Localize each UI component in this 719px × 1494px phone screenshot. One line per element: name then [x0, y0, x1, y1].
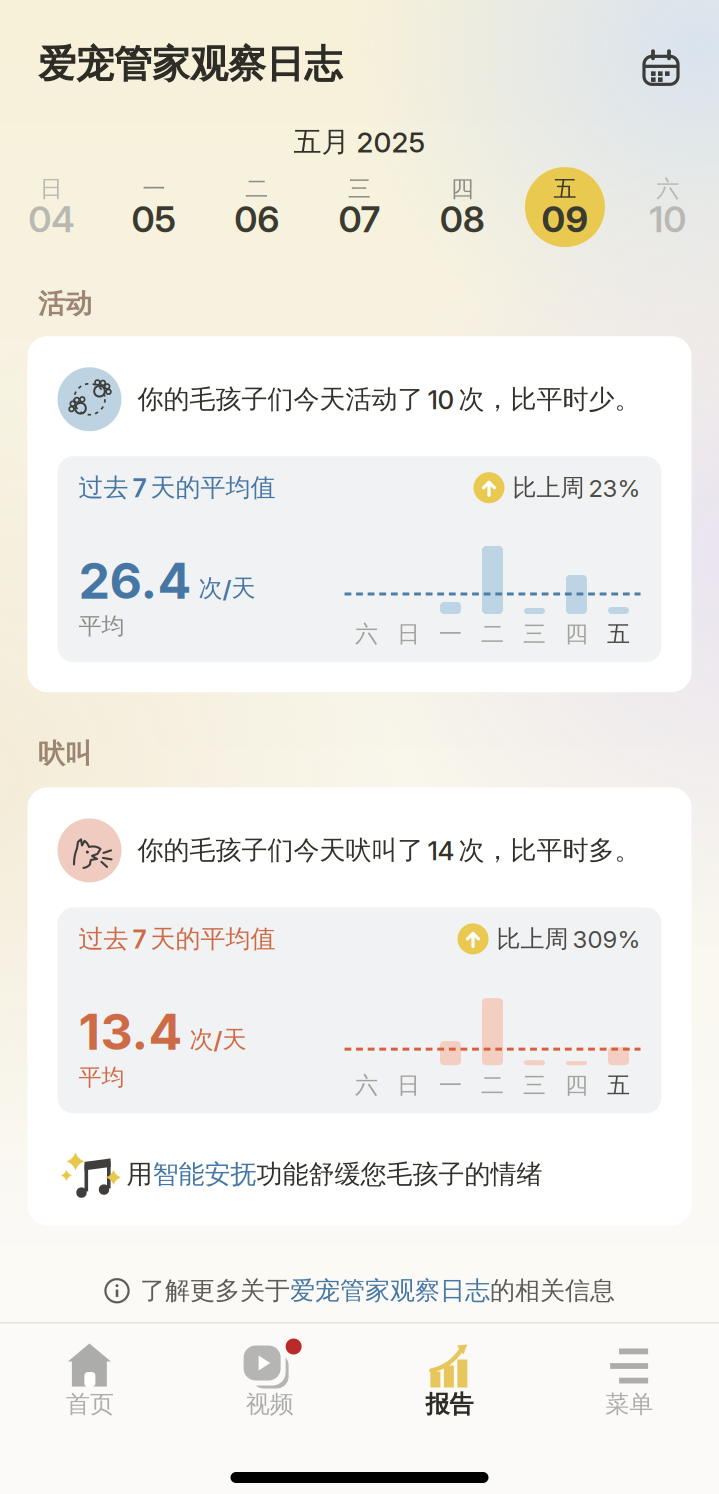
staticText: 四	[565, 620, 588, 648]
button[interactable]: 四	[411, 165, 514, 249]
staticText: 平均	[78, 1063, 124, 1091]
staticText: 六	[656, 175, 679, 203]
staticText: 视频	[246, 1389, 294, 1419]
staticText: 07	[338, 198, 380, 240]
staticText: 智能安抚	[152, 1158, 256, 1190]
button[interactable]: 了解更多关于	[104, 1275, 615, 1306]
button[interactable]: 六	[616, 165, 719, 249]
staticText: 26.4	[78, 551, 191, 610]
staticText: 爱宠管家观察日志	[38, 41, 342, 88]
staticText: 04	[28, 198, 74, 240]
staticText: 一	[143, 175, 166, 203]
staticText: 五	[553, 175, 576, 203]
staticText: 五	[607, 620, 630, 648]
staticText: 活动	[38, 287, 92, 320]
staticText: 四	[451, 175, 474, 203]
staticText: 六	[355, 1071, 378, 1099]
staticText: 四	[565, 1071, 588, 1099]
button[interactable]: 五	[514, 165, 616, 249]
staticText: 三	[348, 175, 371, 203]
staticText: 三	[523, 1071, 546, 1099]
button[interactable]: 三	[308, 165, 411, 249]
staticText: 05	[132, 198, 177, 240]
button[interactable]: 选择日期	[639, 42, 683, 86]
button[interactable]: 报告	[359, 1335, 539, 1419]
staticText: 日	[397, 620, 420, 648]
button[interactable]: 日	[0, 165, 103, 249]
staticText: 比上周 309%	[496, 924, 640, 954]
staticText: 次/天	[189, 1025, 246, 1054]
staticText: 平均	[78, 612, 124, 640]
button[interactable]: 菜单	[539, 1335, 719, 1419]
staticText: 五月 2025	[293, 125, 425, 159]
staticText: 六	[355, 620, 378, 648]
staticText: 二	[245, 175, 268, 203]
button[interactable]: 二	[205, 165, 308, 249]
staticText: 二	[481, 1071, 504, 1099]
staticText: 爱宠管家观察日志	[290, 1275, 490, 1306]
button[interactable]: 用	[57, 1143, 661, 1205]
button[interactable]: 视频	[180, 1335, 360, 1419]
button[interactable]: 一	[103, 165, 205, 249]
staticText: 06	[234, 198, 279, 240]
staticText: 吠叫	[38, 737, 92, 770]
button[interactable]: 首页	[0, 1335, 180, 1419]
staticText: 日	[397, 1071, 420, 1099]
staticText: 比上周 23%	[512, 473, 640, 502]
staticText: 用	[126, 1158, 152, 1190]
staticText: 五	[607, 1071, 630, 1099]
staticText: 过去 7 天的平均值	[78, 923, 275, 954]
staticText: 菜单	[605, 1389, 653, 1419]
staticText: 09	[541, 198, 588, 240]
staticText: 13.4	[78, 1002, 182, 1061]
staticText: 一	[439, 620, 462, 648]
staticText: 报告	[425, 1389, 473, 1419]
staticText: 10	[649, 198, 686, 240]
staticText: 二	[481, 620, 504, 648]
staticText: 了解更多关于	[140, 1275, 290, 1306]
staticText: 日	[40, 175, 63, 203]
staticText: 过去 7 天的平均值	[78, 472, 275, 503]
staticText: 次/天	[198, 573, 255, 603]
staticText: 08	[440, 198, 485, 240]
staticText: 功能舒缓您毛孩子的情绪	[256, 1158, 542, 1190]
staticText: 你的毛孩子们今天活动了 10 次，比平时少。	[137, 383, 640, 415]
staticText: 的相关信息	[490, 1275, 615, 1306]
staticText: 一	[439, 1071, 462, 1099]
staticText: 三	[523, 620, 546, 648]
staticText: 首页	[66, 1389, 114, 1419]
staticText: 你的毛孩子们今天吠叫了 14 次，比平时多。	[137, 834, 640, 866]
